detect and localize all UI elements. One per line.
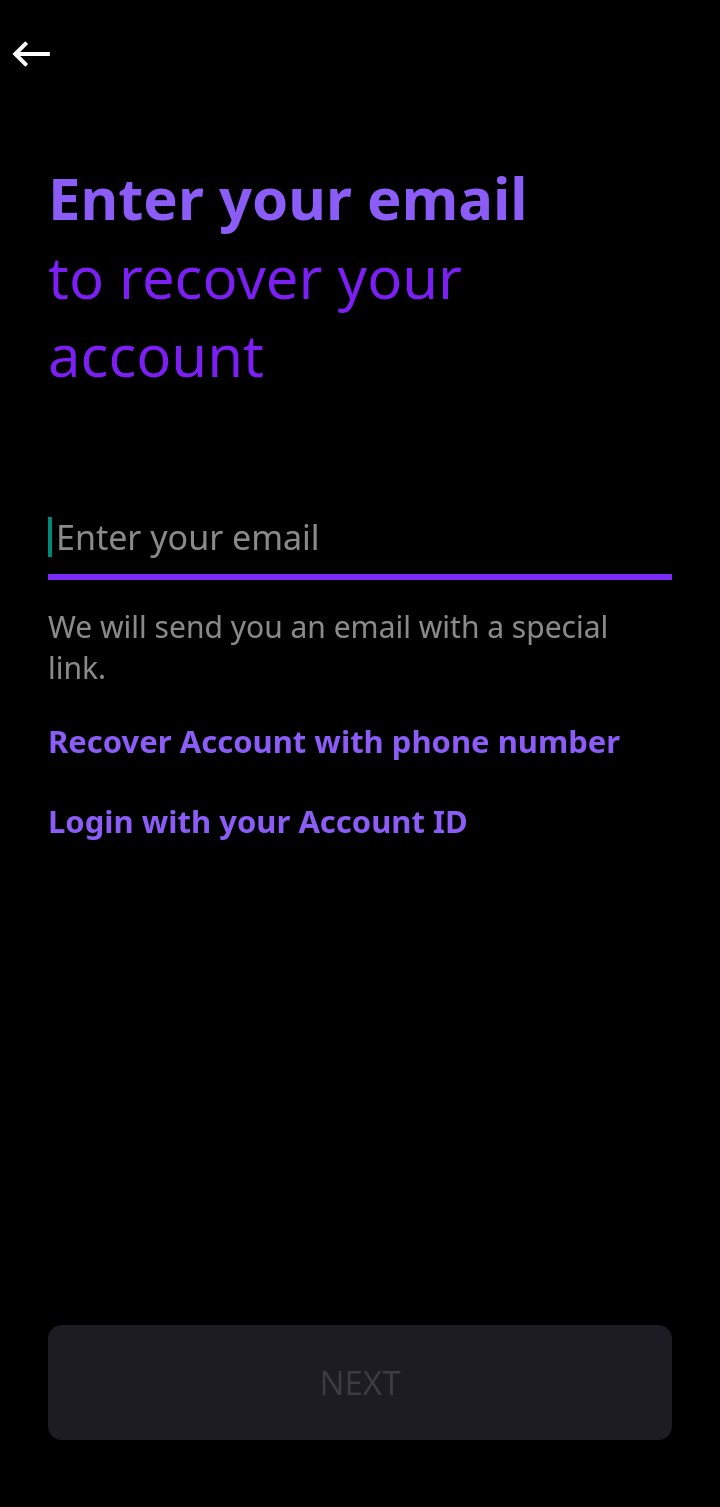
- button[interactable]: Login with your Account ID: [48, 792, 672, 850]
- staticText: Enter your email: [48, 158, 528, 237]
- staticText: We will send you an email with a special…: [48, 606, 672, 688]
- button[interactable]: Enter your email: [48, 500, 672, 574]
- staticText: to recover your account: [48, 237, 672, 394]
- button[interactable]: NEXT: [48, 1325, 672, 1440]
- staticText: Enter your email: [56, 514, 320, 560]
- button[interactable]: Back: [4, 26, 60, 82]
- staticText: NEXT: [319, 1360, 401, 1405]
- button[interactable]: Recover Account with phone number: [48, 712, 672, 770]
- staticText: Recover Account with phone number: [48, 720, 621, 762]
- staticText: Login with your Account ID: [48, 800, 468, 842]
